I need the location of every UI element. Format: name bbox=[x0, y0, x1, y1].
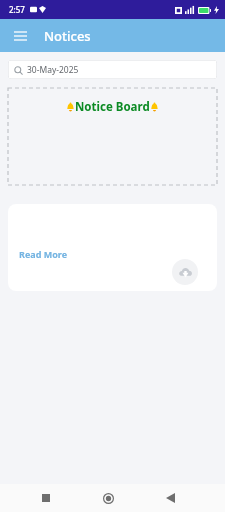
button[interactable]: Home bbox=[94, 484, 122, 512]
staticText: 2:57 bbox=[9, 4, 25, 15]
button[interactable]: Read More bbox=[8, 204, 217, 291]
staticText: Notice Board bbox=[75, 99, 150, 115]
staticText: 30-May-2025 bbox=[27, 64, 79, 76]
staticText: Notices bbox=[44, 27, 91, 45]
button[interactable]: Read More bbox=[19, 248, 68, 260]
button[interactable]: Recent apps bbox=[32, 484, 60, 512]
button[interactable]: Open navigation menu bbox=[8, 24, 32, 48]
button[interactable]: Back bbox=[156, 484, 184, 512]
button[interactable]: 30-May-2025 bbox=[8, 60, 217, 79]
button[interactable]: Download bbox=[172, 259, 198, 285]
